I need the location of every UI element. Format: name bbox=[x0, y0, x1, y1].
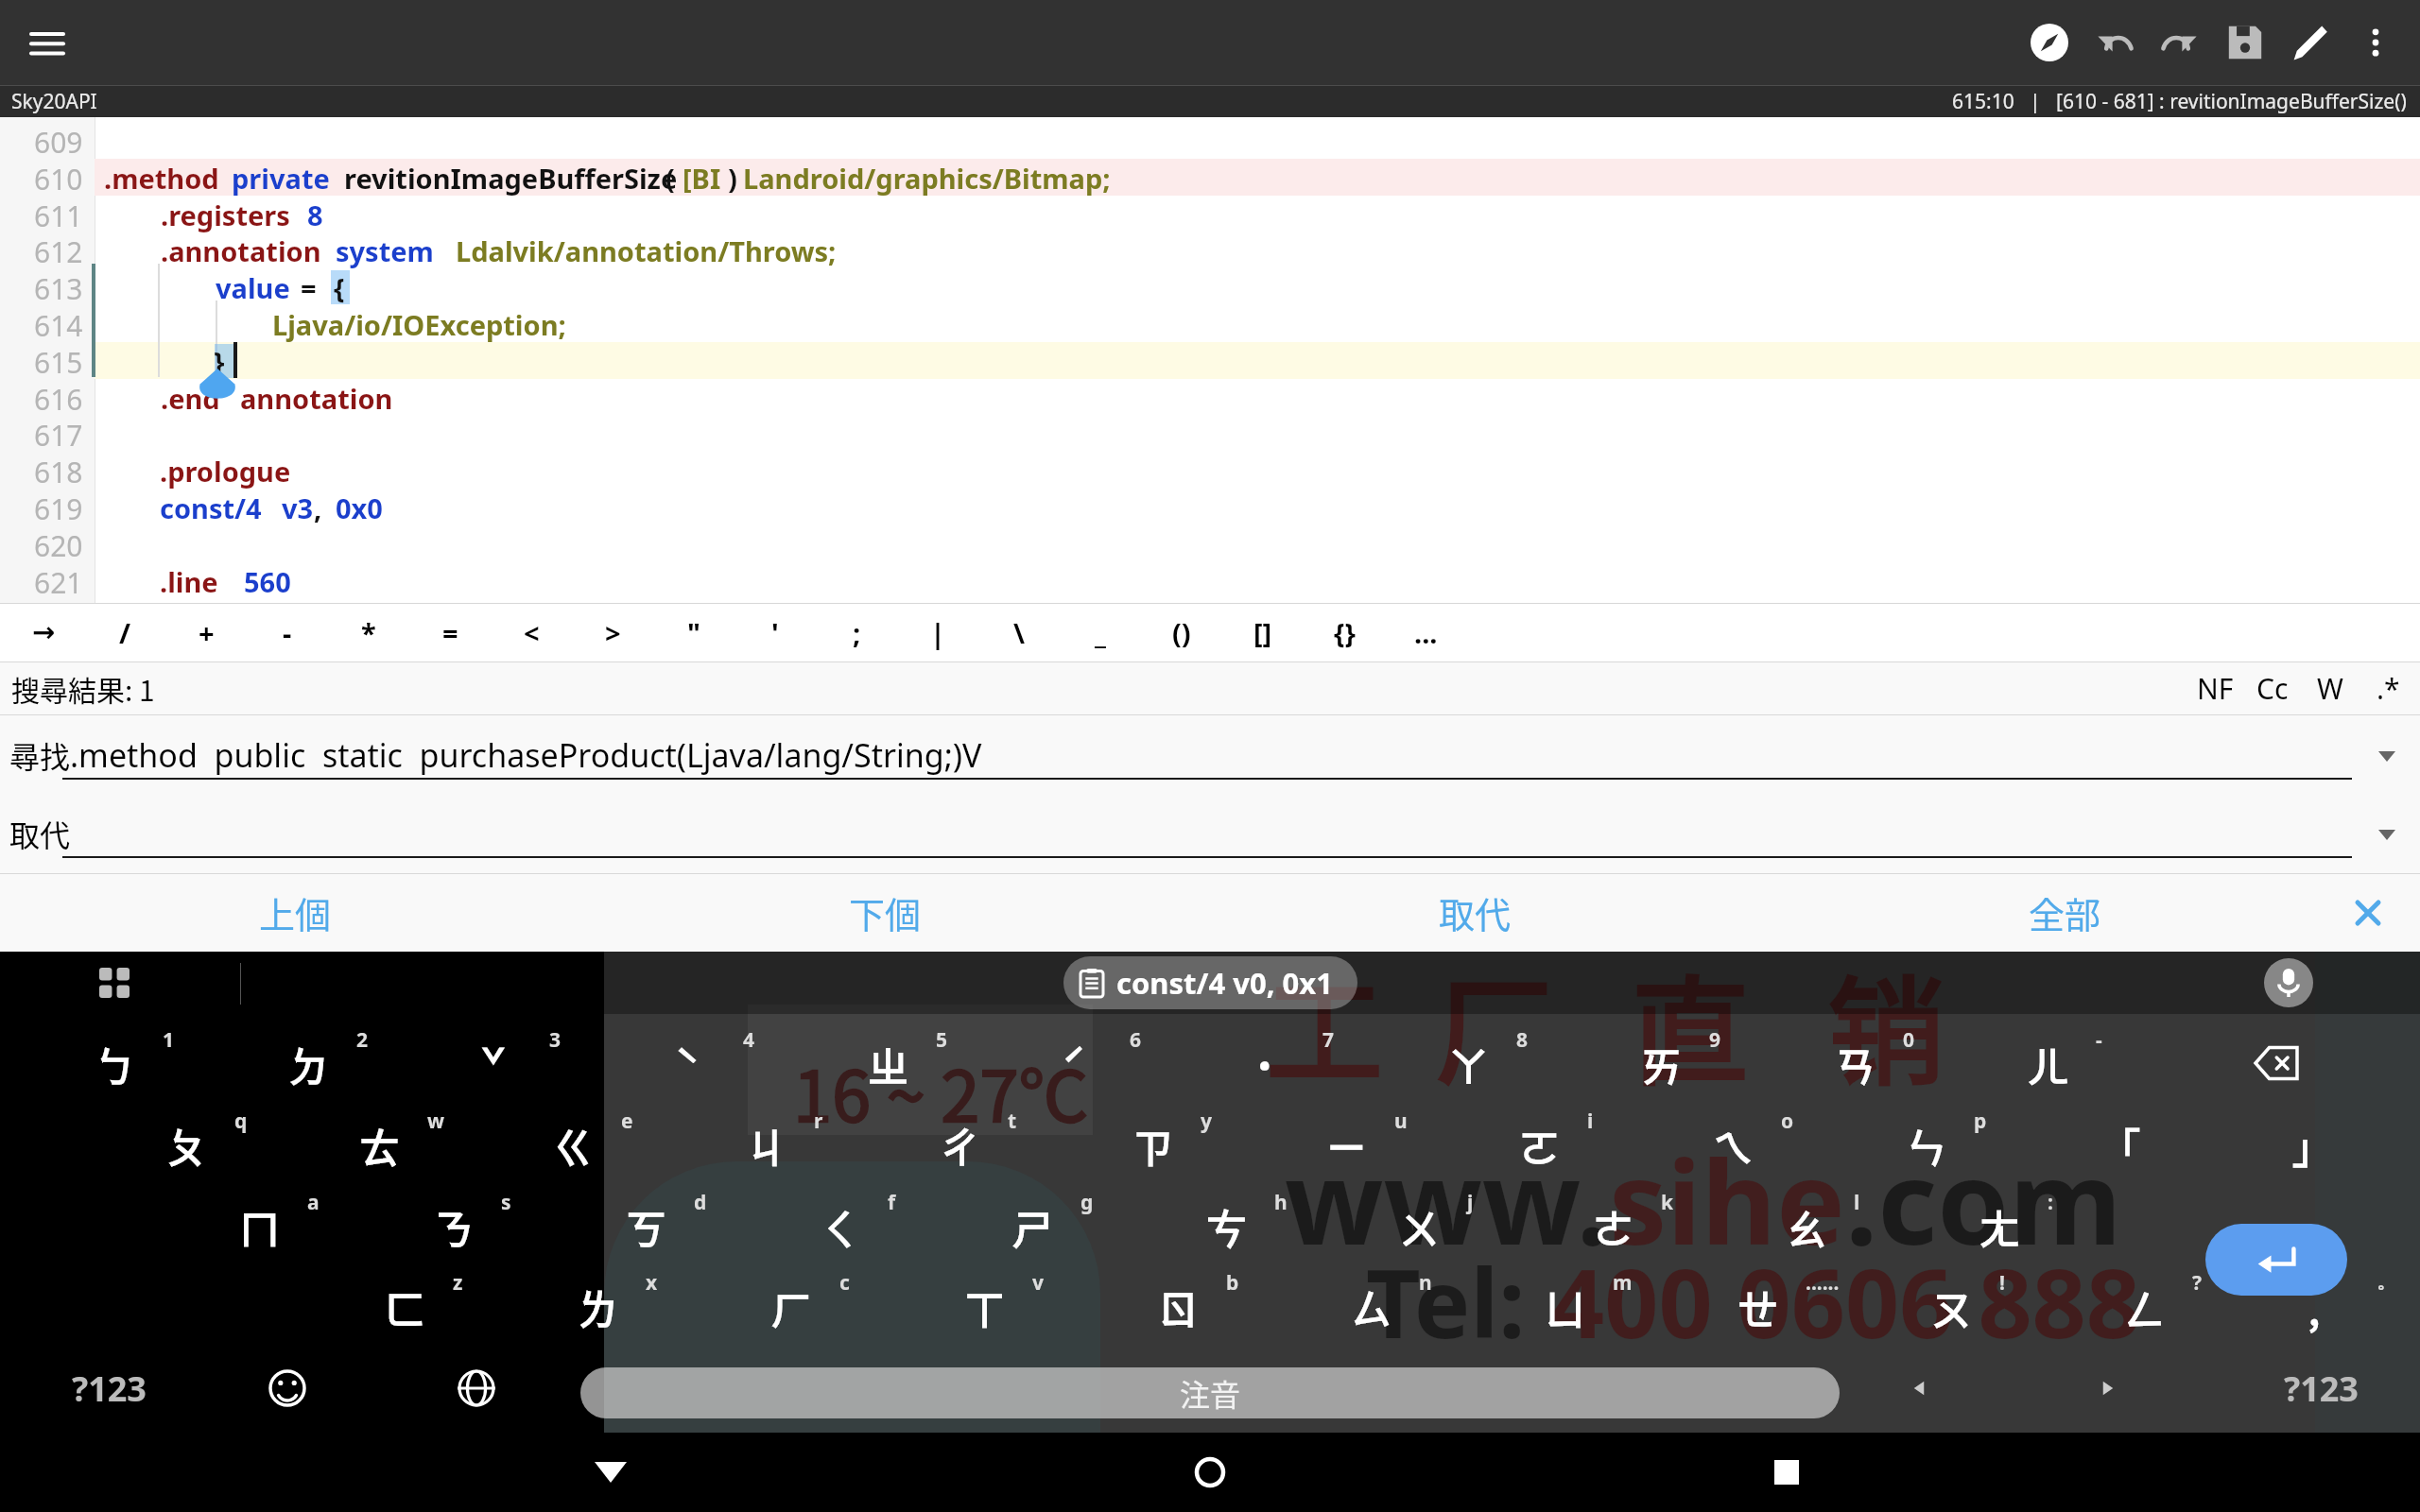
button[interactable]: ㄨ bbox=[1318, 1187, 1507, 1266]
staticText: ㄞ bbox=[1641, 1035, 1682, 1093]
button[interactable]: ㄩ bbox=[1463, 1267, 1652, 1347]
button[interactable]: < bbox=[491, 603, 572, 661]
button[interactable]: 」 bbox=[2211, 1106, 2400, 1185]
button[interactable]: Undo bbox=[2083, 10, 2147, 75]
button[interactable]: ㄛ bbox=[1438, 1106, 1627, 1185]
button[interactable]: ㄅ bbox=[13, 1024, 202, 1104]
button[interactable]: ㄏ bbox=[690, 1267, 879, 1347]
staticText: > bbox=[605, 614, 621, 651]
button[interactable]: | bbox=[897, 603, 978, 661]
button[interactable]: ㄖ bbox=[1077, 1267, 1266, 1347]
button[interactable]: ˙ bbox=[1173, 1024, 1362, 1104]
button[interactable]: ㄊ bbox=[278, 1106, 467, 1185]
button[interactable]: {} bbox=[1304, 603, 1385, 661]
button[interactable]: ㄗ bbox=[1051, 1106, 1240, 1185]
button[interactable]: Explore bbox=[2017, 10, 2082, 75]
button[interactable]: > bbox=[572, 603, 653, 661]
button[interactable]: / bbox=[84, 603, 165, 661]
staticText: {} bbox=[1334, 614, 1356, 651]
button[interactable]: ?123 bbox=[28, 1349, 189, 1428]
button[interactable]: ㄇ bbox=[158, 1187, 347, 1266]
button[interactable]: ㄧ bbox=[1245, 1106, 1434, 1185]
button[interactable]: .* bbox=[2359, 661, 2416, 714]
button[interactable]: _ bbox=[1060, 603, 1141, 661]
button[interactable]: ... bbox=[1385, 603, 1466, 661]
button[interactable]: () bbox=[1141, 603, 1222, 661]
button[interactable]: ㄈ bbox=[303, 1267, 493, 1347]
button[interactable]: → bbox=[3, 603, 84, 661]
button[interactable]: ㄡ bbox=[1850, 1267, 2039, 1347]
button[interactable]: Backspace bbox=[2229, 1023, 2324, 1103]
button[interactable]: ˇ bbox=[400, 1024, 589, 1104]
button[interactable]: Home bbox=[1153, 1433, 1267, 1512]
button[interactable]: Save bbox=[2213, 10, 2277, 75]
button[interactable]: ㄤ bbox=[1898, 1187, 2087, 1266]
button[interactable]: 取代 bbox=[1180, 873, 1770, 952]
button[interactable]: ㄟ bbox=[1632, 1106, 1821, 1185]
button[interactable]: Voice input bbox=[2264, 958, 2313, 1007]
button[interactable]: Apps bbox=[93, 961, 136, 1005]
button[interactable]: ㄝ bbox=[1656, 1267, 1845, 1347]
button[interactable]: ' bbox=[735, 603, 816, 661]
button[interactable]: ㄣ bbox=[1824, 1106, 2014, 1185]
staticText: ㄔ bbox=[940, 1116, 980, 1175]
button[interactable]: NF bbox=[2187, 661, 2243, 714]
button[interactable]: ㄓ bbox=[786, 1024, 976, 1104]
button[interactable]: const/4 v0, 0x1 bbox=[1063, 956, 1357, 1009]
button[interactable]: ㄆ bbox=[85, 1106, 274, 1185]
button[interactable]: , bbox=[2227, 1267, 2416, 1347]
button[interactable]: * bbox=[328, 603, 409, 661]
button[interactable]: ㄔ bbox=[858, 1106, 1047, 1185]
button[interactable]: ㄑ bbox=[738, 1187, 927, 1266]
button[interactable]: Dropdown bbox=[2359, 728, 2415, 784]
button[interactable]: ㄘ bbox=[1125, 1187, 1314, 1266]
button[interactable]: Menu bbox=[15, 11, 79, 76]
button[interactable]: ㄕ bbox=[931, 1187, 1120, 1266]
button[interactable]: Recents bbox=[1730, 1433, 1843, 1512]
button[interactable]: ㄒ bbox=[883, 1267, 1072, 1347]
button[interactable]: ㄙ bbox=[1270, 1267, 1459, 1347]
button[interactable]: [] bbox=[1222, 603, 1304, 661]
button[interactable]: ㄐ bbox=[665, 1106, 854, 1185]
button[interactable]: 「 bbox=[2018, 1106, 2207, 1185]
button[interactable]: ; bbox=[816, 603, 897, 661]
button[interactable]: ㄢ bbox=[1754, 1024, 1943, 1104]
button[interactable]: ˋ bbox=[594, 1024, 783, 1104]
button[interactable]: 注音 bbox=[580, 1367, 1840, 1418]
button[interactable]: ㄠ bbox=[1704, 1187, 1893, 1266]
button[interactable]: = bbox=[409, 603, 491, 661]
button[interactable]: 下個 bbox=[590, 873, 1180, 952]
button[interactable]: - bbox=[247, 603, 328, 661]
button[interactable]: ㄍ bbox=[472, 1106, 661, 1185]
button[interactable]: 全部 bbox=[1770, 873, 2359, 952]
button[interactable]: 上個 bbox=[0, 873, 590, 952]
button[interactable]: Dropdown bbox=[2359, 806, 2415, 863]
button[interactable]: Next bbox=[2061, 1349, 2155, 1428]
button[interactable]: Language bbox=[429, 1349, 524, 1428]
button[interactable]: Enter bbox=[2205, 1224, 2347, 1296]
button[interactable]: Close bbox=[2316, 873, 2420, 952]
button[interactable]: ㄋ bbox=[352, 1187, 541, 1266]
button[interactable]: Previous bbox=[1872, 1349, 1966, 1428]
button[interactable]: Back bbox=[554, 1433, 667, 1512]
button[interactable]: Redo bbox=[2148, 10, 2212, 75]
button[interactable]: ㄉ bbox=[207, 1024, 396, 1104]
button[interactable]: ㄥ bbox=[2043, 1267, 2232, 1347]
button[interactable]: ㄞ bbox=[1560, 1024, 1749, 1104]
button[interactable]: + bbox=[165, 603, 247, 661]
button[interactable]: Cc bbox=[2244, 661, 2301, 714]
button[interactable]: W bbox=[2302, 661, 2359, 714]
button[interactable]: ˊ bbox=[980, 1024, 1169, 1104]
staticText: .method bbox=[104, 160, 219, 197]
button[interactable]: More options bbox=[2343, 10, 2408, 75]
button[interactable]: ?123 bbox=[2240, 1349, 2401, 1428]
button[interactable]: Edit bbox=[2279, 10, 2343, 75]
button[interactable]: ㄌ bbox=[496, 1267, 685, 1347]
button[interactable]: \ bbox=[978, 603, 1060, 661]
button[interactable]: Emoji bbox=[240, 1349, 335, 1428]
button[interactable]: ㄚ bbox=[1367, 1024, 1556, 1104]
button[interactable]: ㄦ bbox=[1946, 1024, 2135, 1104]
button[interactable]: ㄜ bbox=[1512, 1187, 1701, 1266]
button[interactable]: ㄎ bbox=[544, 1187, 734, 1266]
button[interactable]: " bbox=[653, 603, 735, 661]
